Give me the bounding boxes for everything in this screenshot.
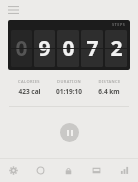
staticText: DURATION — [57, 79, 81, 84]
button[interactable]: DURATION — [49, 79, 89, 96]
button[interactable]: Cards — [82, 158, 110, 182]
button[interactable]: Pause — [60, 123, 79, 142]
button[interactable]: Stats — [110, 158, 138, 182]
button[interactable]: Activity — [27, 158, 54, 182]
staticText: 0 — [62, 34, 75, 63]
staticText: CALORIES — [18, 79, 40, 84]
button[interactable]: DISTANCE — [89, 79, 129, 96]
staticText: 7 — [86, 34, 99, 63]
button[interactable]: STEPS — [8, 20, 130, 70]
button[interactable]: Lock — [54, 158, 82, 182]
staticText: 9 — [38, 34, 51, 63]
button[interactable]: Menu — [5, 2, 21, 18]
staticText: 6.4 km — [98, 87, 120, 96]
button[interactable]: CALORIES — [9, 79, 49, 96]
staticText: STEPS — [112, 22, 126, 27]
button[interactable]: Settings — [0, 158, 27, 182]
staticText: 0 — [15, 34, 28, 63]
staticText: 2 — [110, 34, 123, 63]
staticText: 01:19:10 — [56, 87, 82, 96]
staticText: DISTANCE — [98, 79, 121, 84]
staticText: 423 cal — [18, 87, 41, 96]
